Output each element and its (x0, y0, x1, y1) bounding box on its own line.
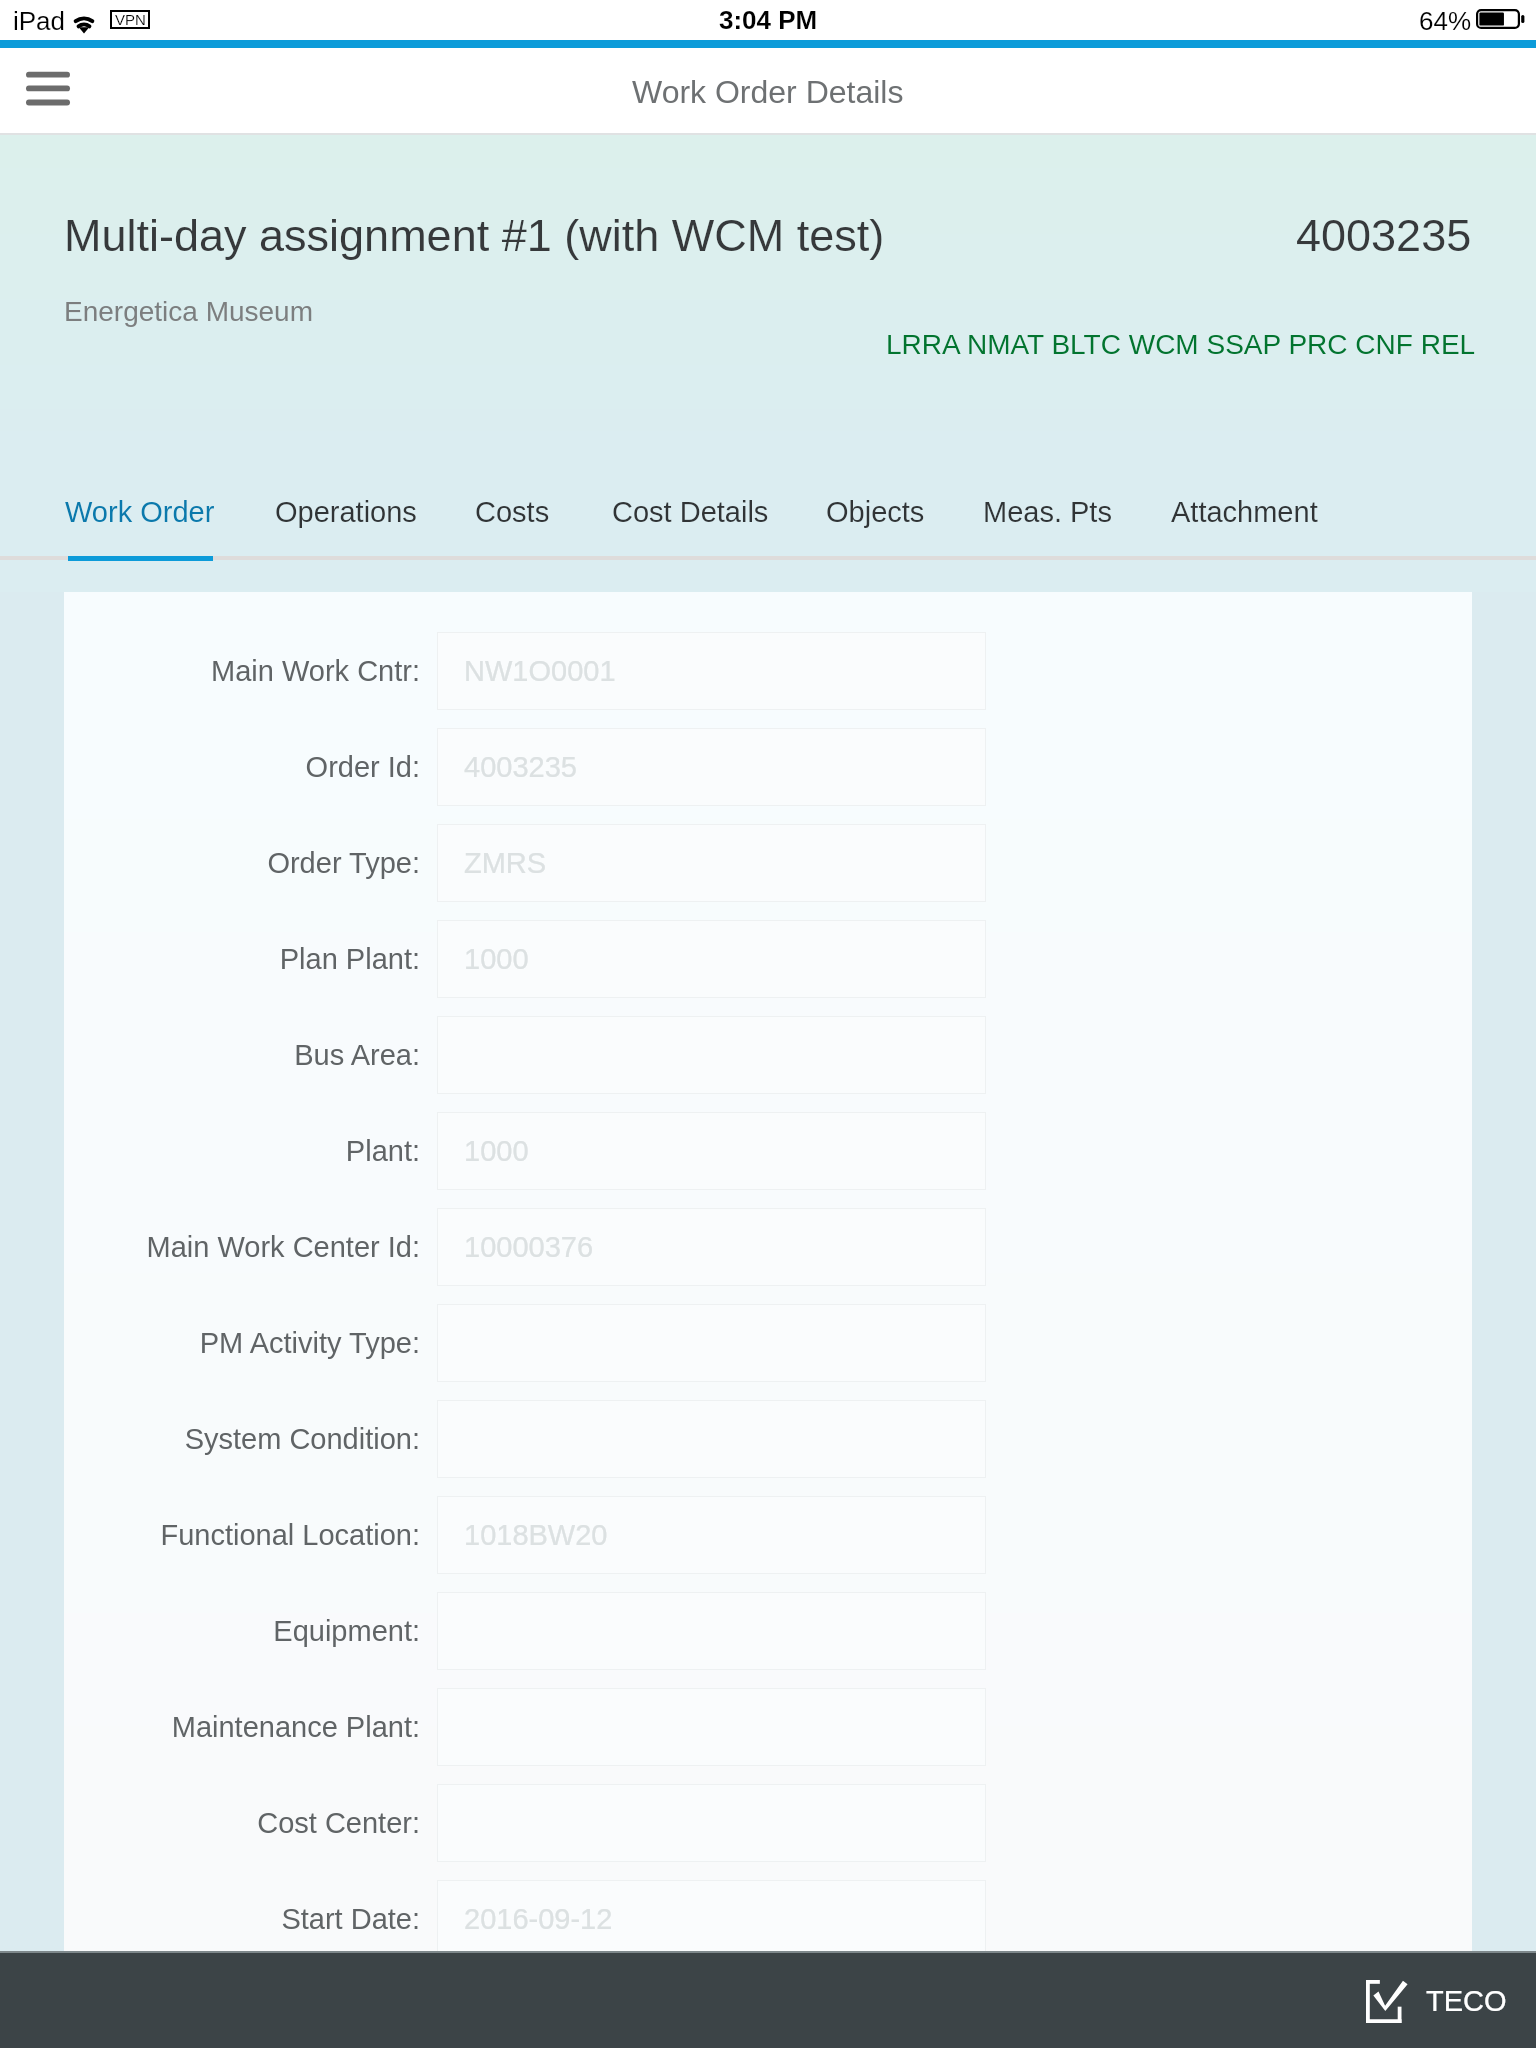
staticText: VPN (115, 11, 146, 28)
button[interactable]: Objects (826, 486, 925, 560)
staticText: Multi-day assignment #1 (with WCM test) (64, 210, 885, 260)
staticText: 1018BW20 (464, 1519, 608, 1551)
staticText: TECO (1426, 1985, 1507, 2017)
staticText: PM Activity Type: (199, 1327, 420, 1359)
staticText: Main Work Cntr: (211, 655, 420, 687)
button[interactable]: Work Order (65, 486, 215, 560)
button[interactable]: Attachment (1171, 486, 1318, 560)
staticText: System Condition: (184, 1423, 420, 1455)
staticText: LRRA NMAT BLTC WCM SSAP PRC CNF REL (886, 329, 1476, 360)
staticText: Start Date: (281, 1903, 420, 1935)
button[interactable]: Menu (6, 54, 90, 130)
staticText: NW1O0001 (464, 655, 616, 687)
staticText: Attachment (1171, 496, 1318, 528)
staticText: Maintenance Plant: (171, 1711, 420, 1743)
staticText: Plan Plant: (279, 943, 420, 975)
staticText: ZMRS (464, 847, 547, 879)
button[interactable]: TECO (1366, 1963, 1507, 2039)
staticText: Work Order (65, 496, 215, 528)
staticText: Energetica Museum (64, 296, 314, 327)
button[interactable]: NW1O0001 (437, 632, 986, 710)
button[interactable]: 1018BW20 (437, 1496, 986, 1574)
staticText: Operations (275, 496, 417, 528)
button[interactable]: Costs (475, 486, 550, 560)
staticText: Order Id: (305, 751, 420, 783)
staticText: iPad (13, 6, 66, 35)
staticText: 64% (1419, 6, 1472, 35)
button[interactable]: 10000376 (437, 1208, 986, 1286)
staticText: 10000376 (464, 1231, 594, 1263)
button[interactable]: Meas. Pts (983, 486, 1112, 560)
button[interactable]: 1000 (437, 920, 986, 998)
staticText: Order Type: (267, 847, 420, 879)
staticText: 1000 (464, 943, 529, 975)
staticText: Objects (826, 496, 925, 528)
staticText: 4003235 (1296, 210, 1472, 260)
button[interactable]: ZMRS (437, 824, 986, 902)
staticText: Cost Details (612, 496, 769, 528)
staticText: Functional Location: (160, 1519, 420, 1551)
staticText: Meas. Pts (983, 496, 1112, 528)
staticText: Cost Center: (257, 1807, 420, 1839)
staticText: Work Order Details (632, 74, 904, 110)
staticText: Main Work Center Id: (146, 1231, 420, 1263)
staticText: Equipment: (273, 1615, 420, 1647)
staticText: Bus Area: (294, 1039, 420, 1071)
button[interactable]: 4003235 (437, 728, 986, 806)
staticText: Plant: (345, 1135, 420, 1167)
button[interactable]: 1000 (437, 1112, 986, 1190)
staticText: 4003235 (464, 751, 577, 783)
staticText: 3:04 PM (719, 5, 818, 34)
button[interactable]: Operations (275, 486, 417, 560)
staticText: 2016-09-12 (464, 1903, 613, 1935)
staticText: 1000 (464, 1135, 529, 1167)
button[interactable]: Cost Details (612, 486, 769, 560)
staticText: Costs (475, 496, 550, 528)
button[interactable]: 2016-09-12 (437, 1880, 986, 1958)
